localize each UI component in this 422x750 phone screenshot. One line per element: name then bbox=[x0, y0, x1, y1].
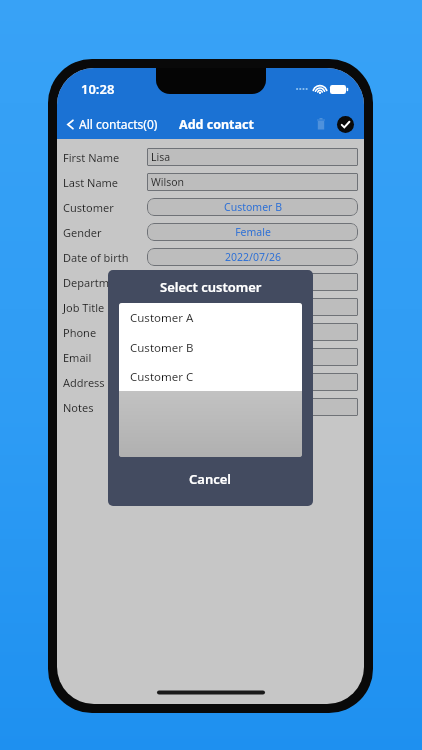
staticText: Email bbox=[63, 350, 147, 365]
staticText: Select customer bbox=[160, 278, 262, 296]
button[interactable]: Address bbox=[63, 370, 358, 394]
staticText: Gender bbox=[63, 225, 147, 240]
staticText: Female bbox=[235, 225, 271, 239]
staticText: All contacts(0) bbox=[79, 116, 158, 132]
button[interactable]: Email bbox=[63, 345, 358, 369]
staticText: Phone bbox=[63, 325, 147, 340]
button[interactable]: Phone bbox=[63, 320, 358, 344]
staticText: Last Name bbox=[63, 175, 147, 190]
staticText: Customer A bbox=[130, 310, 194, 326]
button[interactable]: Customer bbox=[63, 195, 358, 219]
button[interactable]: First Name bbox=[63, 145, 358, 169]
staticText: Customer bbox=[63, 200, 147, 215]
button[interactable]: Delete bbox=[310, 113, 332, 135]
staticText: Customer B bbox=[130, 340, 194, 356]
staticText: Wilson bbox=[151, 175, 185, 189]
button[interactable]: Customer A bbox=[119, 303, 302, 333]
button[interactable]: Job Title bbox=[63, 295, 358, 319]
button[interactable]: Date of birth bbox=[63, 245, 358, 269]
staticText: 10:28 bbox=[81, 80, 115, 98]
staticText: Customer C bbox=[130, 369, 194, 385]
button[interactable]: Customer B bbox=[119, 333, 302, 363]
button[interactable]: All contacts(0) bbox=[65, 116, 158, 132]
staticText: 2022/07/26 bbox=[225, 250, 281, 264]
staticText: Add contact bbox=[179, 116, 254, 133]
button[interactable]: Cancel bbox=[108, 457, 313, 506]
staticText: Department bbox=[63, 275, 147, 290]
staticText: Cancel bbox=[189, 470, 232, 488]
button[interactable]: Gender bbox=[63, 220, 358, 244]
staticText: First Name bbox=[63, 150, 147, 165]
button[interactable]: Notes bbox=[63, 395, 358, 419]
button[interactable]: Department bbox=[63, 270, 358, 294]
button[interactable]: Customer C bbox=[119, 363, 302, 391]
button[interactable]: Save bbox=[334, 113, 356, 135]
staticText: Notes bbox=[63, 400, 147, 415]
staticText: Lisa bbox=[151, 150, 171, 164]
staticText: Address bbox=[63, 375, 147, 390]
staticText: Date of birth bbox=[63, 250, 147, 265]
button[interactable]: Last Name bbox=[63, 170, 358, 194]
staticText: Job Title bbox=[63, 300, 147, 315]
staticText: Customer B bbox=[224, 200, 282, 214]
